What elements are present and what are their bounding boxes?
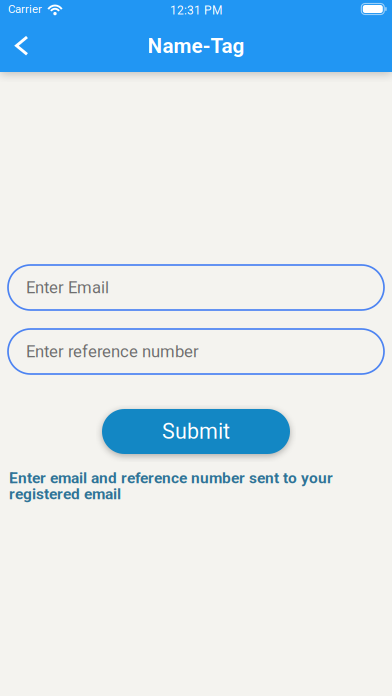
staticText: Enter email and reference number sent to…: [9, 470, 333, 502]
button[interactable]: Submit: [102, 409, 290, 454]
staticText: Enter Email: [26, 278, 109, 297]
button[interactable]: Enter reference number: [8, 329, 384, 374]
button[interactable]: Enter Email: [8, 265, 384, 310]
staticText: 12:31 PM: [170, 3, 222, 18]
staticText: Enter reference number: [26, 342, 199, 361]
staticText: Name-Tag: [147, 34, 244, 58]
button[interactable]: Back: [0, 22, 46, 68]
staticText: Carrier: [8, 2, 42, 16]
staticText: Submit: [162, 419, 230, 444]
